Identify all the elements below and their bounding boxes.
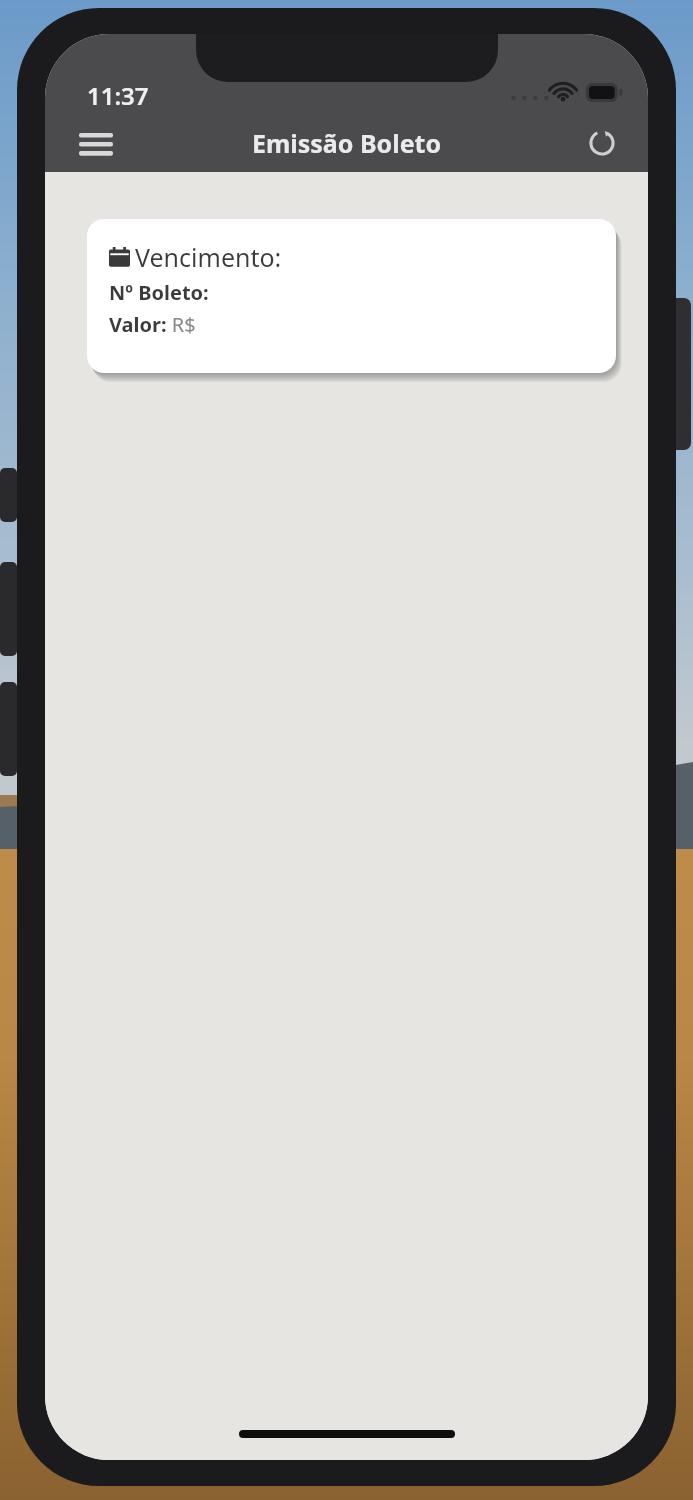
staticText: Emissão Boleto — [45, 126, 648, 160]
button[interactable]: Menu — [63, 116, 129, 172]
staticText: Vencimento: — [135, 240, 282, 274]
button[interactable]: Atualizar — [572, 114, 632, 170]
button[interactable]: Vencimento: — [87, 219, 616, 373]
staticText: 11:37 — [87, 79, 149, 112]
staticText: Valor: R$ — [109, 311, 196, 338]
staticText: Nº Boleto: — [109, 279, 209, 306]
